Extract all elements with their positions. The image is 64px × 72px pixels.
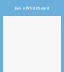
staticText: Join a Whiteboard xyxy=(14,5,49,11)
